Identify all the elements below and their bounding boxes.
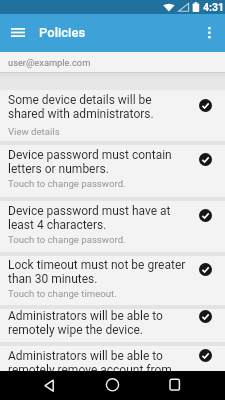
staticText: Device password must contain letters or … xyxy=(8,148,172,176)
staticText: Administrators will be able to remotely … xyxy=(8,309,163,337)
staticText: Touch to change password. xyxy=(8,234,126,245)
button[interactable] xyxy=(0,309,225,342)
staticText: Touch to change timeout. xyxy=(8,288,117,299)
staticText: View details xyxy=(8,126,60,137)
staticText: Administrators will be able to remotely … xyxy=(8,349,172,377)
button[interactable] xyxy=(160,373,190,399)
staticText: Lock timeout must not be greater than 30… xyxy=(8,258,186,286)
staticText: user@example.com xyxy=(8,57,91,68)
button[interactable] xyxy=(0,52,225,72)
staticText: Some device details will be shared with … xyxy=(8,93,154,121)
staticText: Device password must have at least 4 cha… xyxy=(8,204,171,232)
button[interactable] xyxy=(0,90,225,141)
staticText: Touch to change password. xyxy=(8,178,126,189)
button[interactable] xyxy=(34,373,64,399)
staticText: Policies xyxy=(39,25,86,40)
button[interactable] xyxy=(0,145,225,197)
button[interactable] xyxy=(0,346,225,400)
button[interactable] xyxy=(0,201,225,252)
button[interactable] xyxy=(97,373,127,399)
staticText: 4:31 xyxy=(203,1,225,13)
button[interactable] xyxy=(202,24,220,44)
button[interactable] xyxy=(4,25,32,43)
button[interactable] xyxy=(0,256,225,305)
